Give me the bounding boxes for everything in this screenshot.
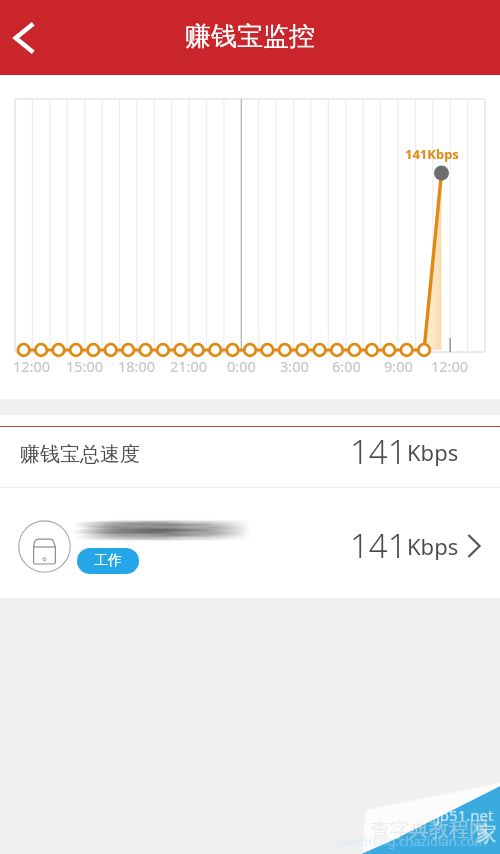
button[interactable]: Back [0, 14, 48, 62]
staticText: 12:00 [13, 356, 51, 376]
staticText: 工作 [94, 552, 122, 570]
staticText: 15:00 [66, 356, 104, 376]
staticText: jb51.net [436, 805, 494, 825]
staticText: 9:00 [384, 356, 413, 376]
button[interactable]: 工作 [0, 488, 500, 598]
button[interactable]: 赚钱宝总速度 [0, 415, 500, 487]
button[interactable]: 工作 [77, 548, 139, 574]
staticText: 141Kbps [405, 145, 459, 163]
staticText: 6:00 [332, 356, 361, 376]
staticText: 赚钱宝监控 [185, 20, 315, 53]
staticText: 3:00 [280, 356, 309, 376]
staticText: 18:00 [118, 356, 156, 376]
other: Details [466, 533, 482, 559]
staticText: 查字典教程网 [370, 818, 490, 843]
staticText: 0:00 [227, 356, 256, 376]
staticText: Kbps [407, 437, 459, 467]
staticText: 12:00 [431, 356, 469, 376]
staticText: 141 [350, 429, 407, 474]
staticText: Kbps [407, 531, 459, 561]
staticText: 家 [476, 821, 497, 847]
staticText: 141 [350, 523, 407, 568]
staticText: 赚钱宝总速度 [20, 442, 140, 467]
staticText: jiaocheng.chazidian.com [336, 832, 487, 850]
staticText: 21:00 [170, 356, 208, 376]
staticText: 查字典教程网 [369, 817, 489, 842]
